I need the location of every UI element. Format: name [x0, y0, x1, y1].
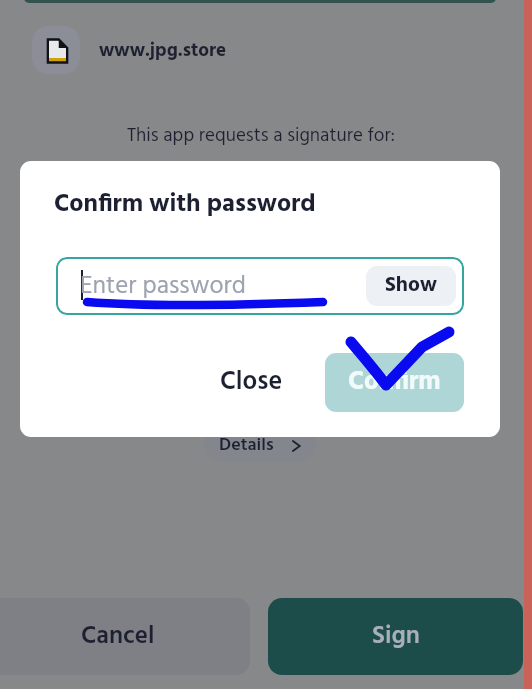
button[interactable]: Close: [189, 353, 314, 412]
staticText: www.jpg.store: [99, 36, 227, 66]
staticText: Close: [220, 362, 283, 404]
button[interactable]: Show: [366, 266, 456, 306]
staticText: Sign: [372, 617, 420, 657]
button[interactable]: Confirm: [325, 353, 464, 412]
staticText: Show: [385, 269, 437, 303]
staticText: Confirm: [348, 362, 441, 404]
staticText: This app requests a signature for:: [0, 121, 527, 151]
staticText: Confirm with password: [54, 185, 316, 225]
staticText: Cancel: [81, 617, 155, 657]
button[interactable]: Sign: [268, 598, 523, 675]
button[interactable]: Details: [204, 429, 316, 461]
staticText: Enter password: [80, 267, 246, 307]
staticText: Details: [219, 431, 274, 460]
button[interactable]: Cancel: [0, 598, 250, 675]
other: Site icon: [47, 39, 68, 63]
